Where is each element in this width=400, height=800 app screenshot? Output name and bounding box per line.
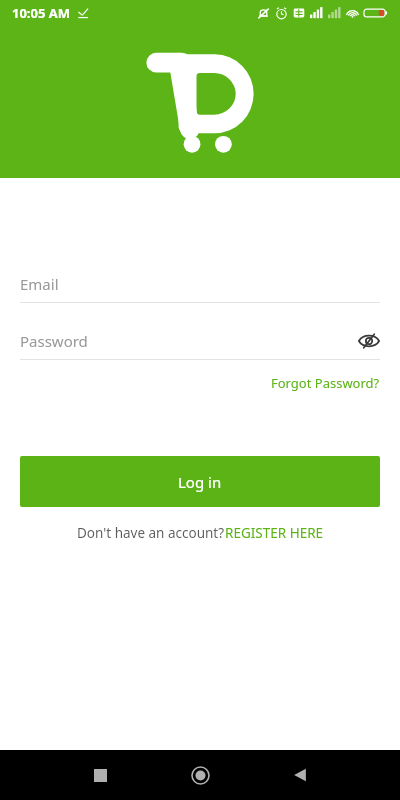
- button[interactable]: REGISTER HERE: [225, 524, 324, 542]
- button[interactable]: Log in: [20, 456, 380, 507]
- staticText: Email: [20, 274, 59, 294]
- staticText: Password: [20, 331, 88, 351]
- button[interactable]: Password: [0, 323, 400, 359]
- button[interactable]: Forgot Password?: [271, 372, 400, 394]
- button[interactable]: Home: [150, 750, 250, 800]
- staticText: 10:05 AM: [12, 4, 71, 22]
- button[interactable]: Show password: [356, 328, 382, 354]
- button[interactable]: Email: [0, 266, 400, 302]
- staticText: Don't have an account?: [77, 524, 225, 542]
- staticText: Log in: [178, 472, 222, 492]
- staticText: REGISTER HERE: [225, 524, 324, 542]
- button[interactable]: Recent apps: [50, 750, 150, 800]
- staticText: Forgot Password?: [271, 374, 380, 392]
- button[interactable]: Back: [250, 750, 350, 800]
